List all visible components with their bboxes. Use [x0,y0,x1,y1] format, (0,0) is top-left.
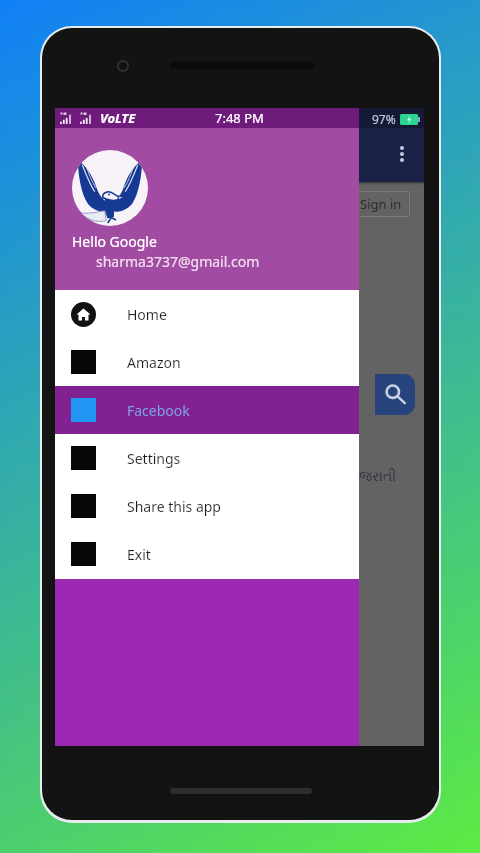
button[interactable]: Exit [55,530,359,578]
button[interactable]: Amazon [55,338,359,386]
staticText: 97% [372,111,396,127]
staticText: Sign in [360,195,402,213]
button[interactable]: Sign in [352,191,410,217]
staticText: Facebook [127,401,190,420]
button[interactable]: Search [375,374,415,415]
staticText: 7:48 PM [215,109,264,127]
staticText: Home [127,305,167,324]
staticText: sharma3737@gmail.com [96,252,260,271]
button[interactable]: Settings [55,434,359,482]
staticText: Exit [127,545,151,564]
staticText: Settings [127,449,181,468]
staticText: Share this app [127,497,221,516]
button[interactable]: More options [390,138,414,166]
staticText: જરાતી [359,470,397,484]
button[interactable]: Home [55,290,359,338]
staticText: VoLTE [100,109,136,127]
button[interactable]: Share this app [55,482,359,530]
button[interactable]: Facebook [55,386,359,434]
staticText: Amazon [127,353,181,372]
staticText: Hello Google [72,232,157,251]
